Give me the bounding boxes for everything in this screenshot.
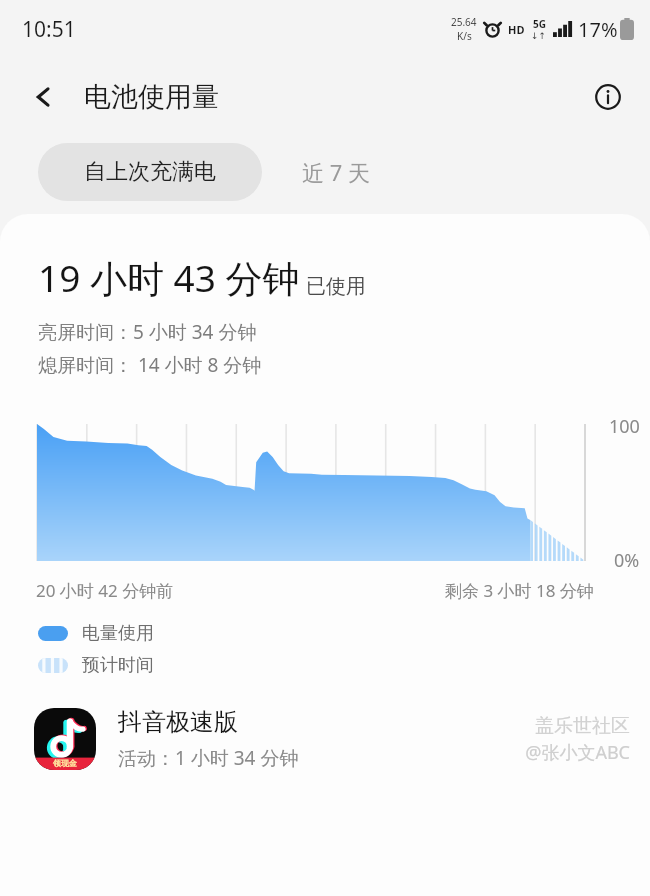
button[interactable]: 领现金 bbox=[0, 707, 650, 771]
staticText: 5G bbox=[533, 17, 546, 31]
staticText: ↓↑ bbox=[531, 31, 547, 41]
staticText: 25.64 bbox=[451, 15, 477, 29]
staticText: 预计时间 bbox=[82, 654, 154, 677]
staticText: 剩余 3 小时 18 分钟 bbox=[445, 579, 594, 602]
staticText: 17% bbox=[578, 16, 618, 43]
button[interactable]: 近 7 天 bbox=[262, 142, 411, 202]
staticText: 领现金 bbox=[53, 758, 77, 768]
staticText: 100 bbox=[609, 414, 640, 439]
staticText: 0% bbox=[614, 548, 640, 573]
staticText: HD bbox=[508, 22, 525, 37]
staticText: 盖乐世社区 bbox=[535, 714, 630, 738]
staticText: 活动：1 小时 34 分钟 bbox=[118, 745, 299, 771]
staticText: 熄屏时间： 14 小时 8 分钟 bbox=[38, 352, 262, 378]
staticText: 近 7 天 bbox=[302, 157, 371, 187]
staticText: 10:51 bbox=[22, 15, 76, 44]
staticText: 抖音极速版 bbox=[118, 707, 238, 737]
staticText: 自上次充满电 bbox=[84, 158, 216, 186]
staticText: 20 小时 42 分钟前 bbox=[36, 579, 174, 602]
staticText: 亮屏时间：5 小时 34 分钟 bbox=[38, 319, 257, 345]
button[interactable]: Information bbox=[586, 75, 630, 119]
button[interactable]: 自上次充满电 bbox=[38, 143, 262, 201]
button[interactable]: Back bbox=[24, 77, 64, 117]
staticText: K/s bbox=[457, 29, 472, 43]
staticText: @张小文ABC bbox=[525, 740, 630, 765]
staticText: 已使用 bbox=[306, 274, 366, 299]
staticText: 电量使用 bbox=[82, 622, 154, 645]
staticText: 电池使用量 bbox=[84, 80, 219, 114]
staticText: 19 小时 43 分钟 bbox=[38, 252, 300, 303]
